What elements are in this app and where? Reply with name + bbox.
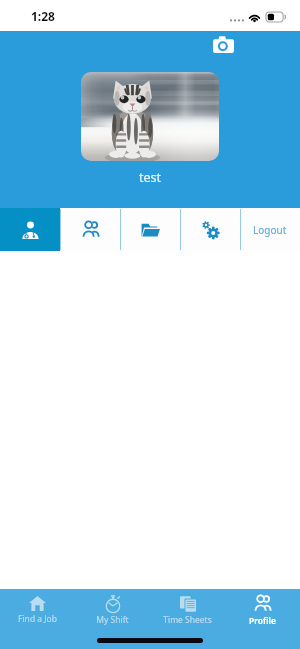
staticText: Time Sheets bbox=[163, 614, 212, 626]
button[interactable]: Change profile photo bbox=[207, 28, 239, 60]
staticText: Logout bbox=[253, 223, 287, 237]
button[interactable]: Settings bbox=[180, 208, 240, 251]
button[interactable]: Profile bbox=[225, 589, 300, 632]
staticText: Profile bbox=[249, 615, 276, 627]
button[interactable]: Find a Job bbox=[0, 589, 75, 632]
button[interactable]: Documents bbox=[120, 208, 180, 251]
button[interactable]: Time Sheets bbox=[150, 589, 225, 632]
button[interactable]: Care worker bbox=[0, 208, 60, 251]
staticText: test bbox=[139, 169, 162, 186]
staticText: 1:28 bbox=[31, 8, 55, 24]
button[interactable]: My Shift bbox=[75, 589, 150, 632]
staticText: My Shift bbox=[96, 614, 129, 626]
staticText: Find a Job bbox=[18, 613, 57, 625]
button[interactable]: Clients bbox=[60, 208, 120, 251]
button[interactable]: Logout bbox=[240, 208, 300, 251]
